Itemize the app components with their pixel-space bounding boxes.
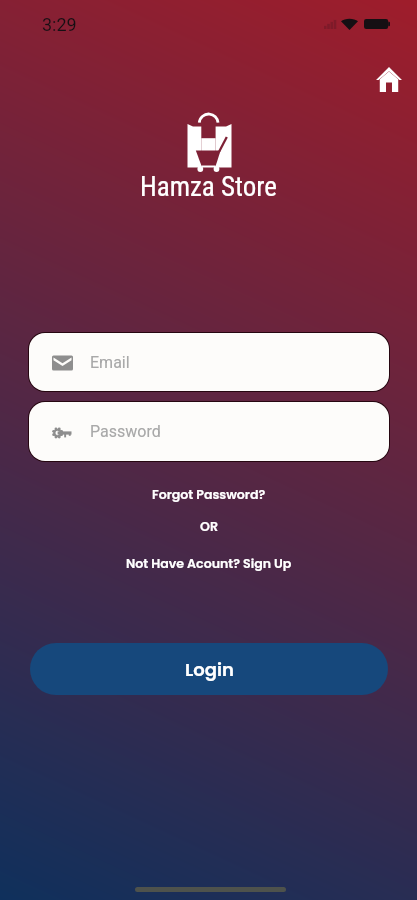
- button[interactable]: Home: [369, 59, 409, 99]
- button[interactable]: Login: [30, 643, 388, 695]
- button[interactable]: Password: [29, 402, 389, 461]
- staticText: Login: [185, 657, 234, 682]
- staticText: Hamza Store: [140, 171, 277, 203]
- staticText: 3:29: [42, 14, 77, 35]
- staticText: Password: [90, 422, 161, 441]
- button[interactable]: Forgot Password?: [152, 486, 266, 504]
- staticText: Email: [90, 353, 130, 372]
- button[interactable]: Not Have Acount? Sign Up: [126, 555, 292, 573]
- staticText: OR: [200, 518, 218, 536]
- button[interactable]: Email: [29, 333, 389, 391]
